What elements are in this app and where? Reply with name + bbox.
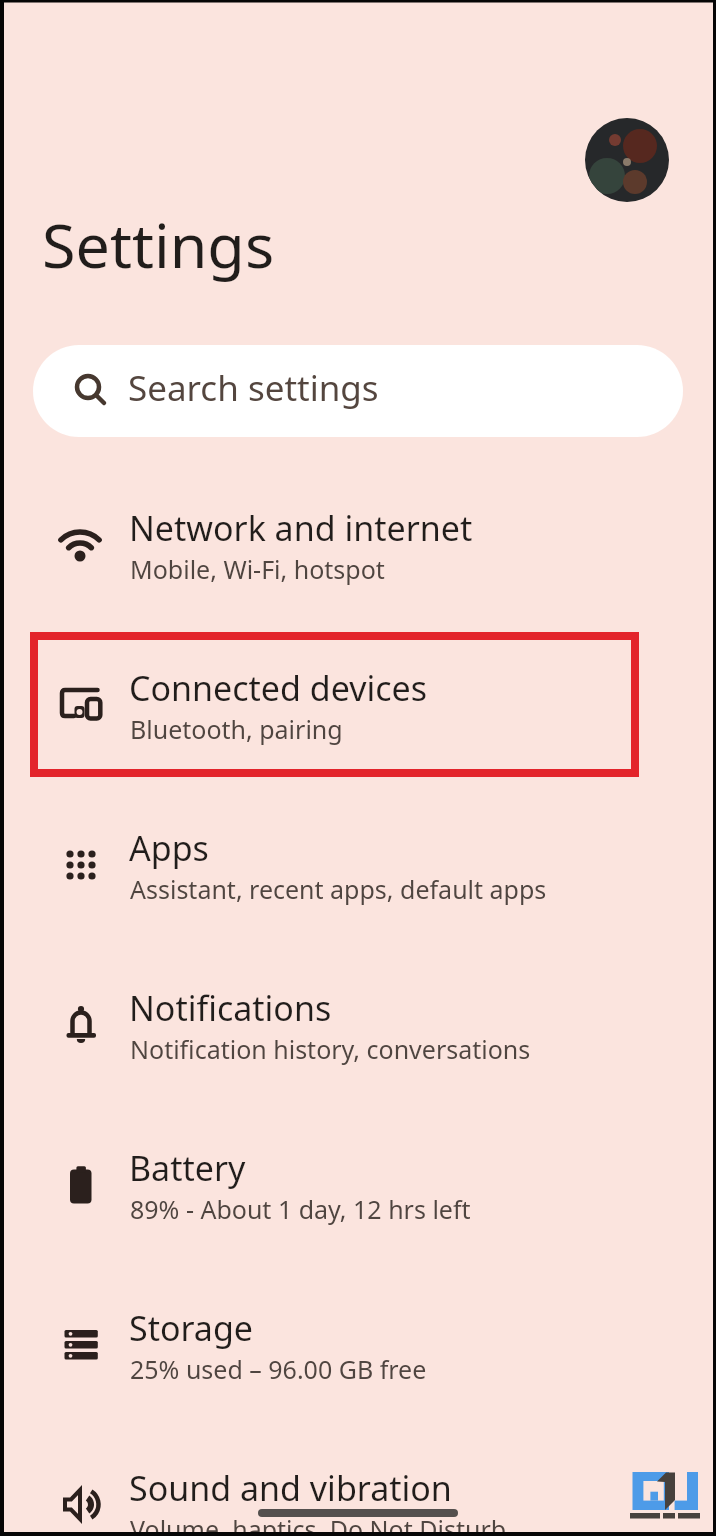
staticText: Apps (129, 825, 209, 871)
staticText: Volume, haptics, Do Not Disturb (130, 1512, 507, 1536)
button[interactable]: Sound and vibration (4, 1425, 709, 1536)
staticText: Storage (129, 1305, 254, 1351)
staticText: Notifications (129, 985, 332, 1031)
staticText: Search settings (128, 364, 379, 412)
button[interactable]: Search settings (33, 345, 683, 437)
button[interactable]: Storage (4, 1265, 709, 1425)
button[interactable]: Notifications (4, 945, 709, 1105)
button[interactable]: Connected devices (4, 625, 709, 785)
staticText: Bluetooth, pairing (130, 712, 343, 746)
button[interactable]: Network and internet (4, 465, 709, 625)
button[interactable]: Apps (4, 785, 709, 945)
staticText: Connected devices (129, 665, 428, 711)
staticText: 25% used – 96.00 GB free (130, 1352, 427, 1386)
staticText: Settings (42, 203, 275, 286)
button[interactable] (585, 118, 669, 202)
button[interactable]: Battery (4, 1105, 709, 1265)
staticText: Battery (129, 1145, 246, 1191)
staticText: Notification history, conversations (130, 1032, 531, 1066)
staticText: Network and internet (129, 505, 473, 551)
staticText: Sound and vibration (129, 1465, 452, 1511)
staticText: Assistant, recent apps, default apps (130, 872, 547, 906)
staticText: Mobile, Wi-Fi, hotspot (130, 552, 385, 586)
staticText: 89% - About 1 day, 12 hrs left (130, 1192, 471, 1226)
